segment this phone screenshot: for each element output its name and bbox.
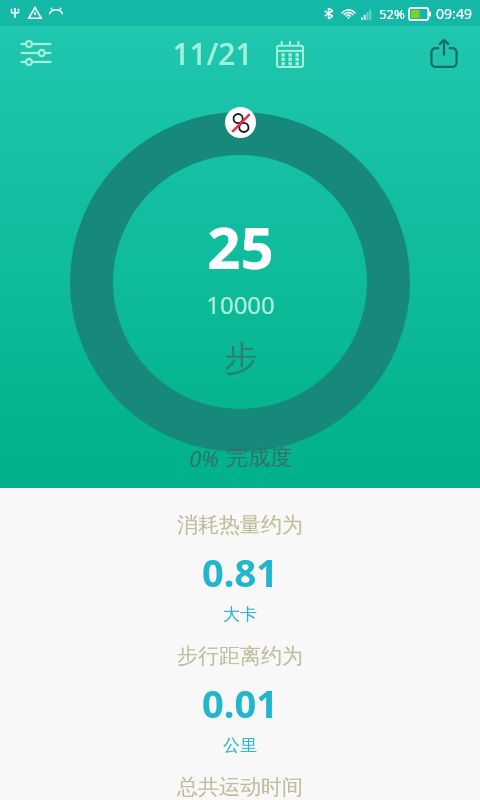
staticText: 0.01 — [202, 677, 278, 729]
staticText: 25 — [207, 207, 274, 286]
staticText: 消耗热量约为 — [177, 512, 303, 538]
button[interactable]: Share — [422, 31, 466, 75]
staticText: 总共运动时间 — [177, 774, 303, 800]
staticText: 完成度 — [226, 444, 292, 472]
staticText: 步 — [224, 337, 258, 380]
button[interactable]: 11/21 — [172, 33, 253, 74]
button[interactable]: Settings — [14, 31, 58, 75]
staticText: 52% — [379, 5, 405, 23]
staticText: 0% — [189, 443, 219, 473]
staticText: 11/21 — [172, 33, 253, 74]
button[interactable]: Calendar — [271, 35, 309, 73]
staticText: 0.81 — [202, 546, 278, 598]
staticText: 公里 — [223, 735, 257, 756]
staticText: 大卡 — [223, 604, 257, 625]
staticText: 步行距离约为 — [177, 643, 303, 669]
button[interactable]: Pedometer disabled — [225, 107, 256, 138]
staticText: 10000 — [206, 288, 275, 321]
staticText: 09:49 — [436, 4, 472, 23]
